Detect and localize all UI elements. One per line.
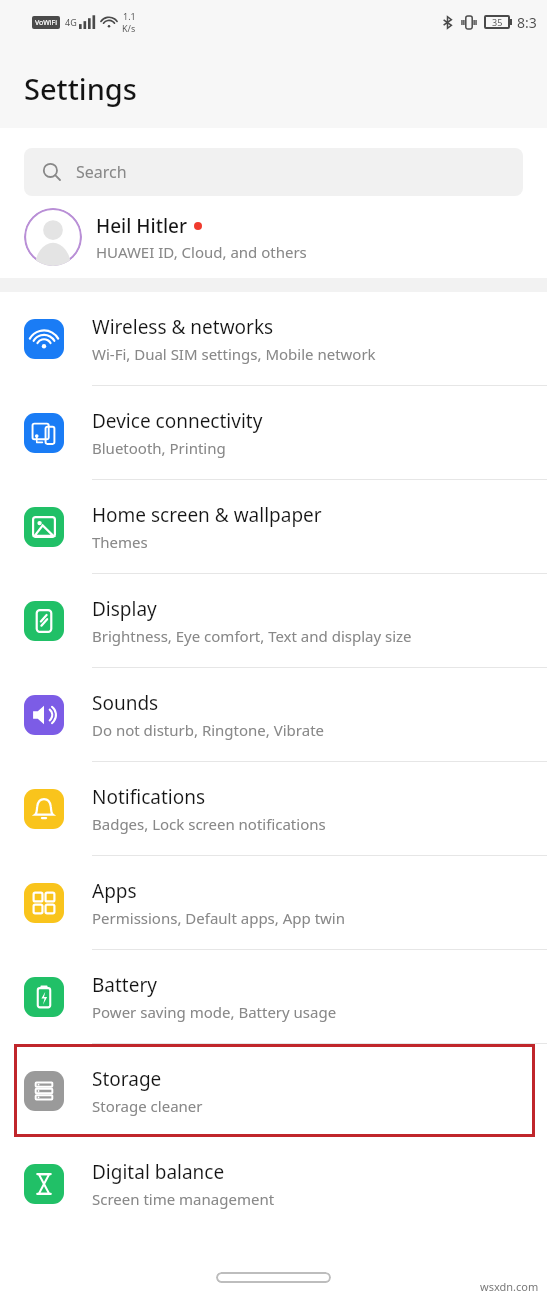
- staticText: Search: [76, 161, 127, 183]
- staticText: Permissions, Default apps, App twin: [92, 908, 346, 928]
- staticText: Storage: [92, 1066, 162, 1092]
- staticText: Screen time management: [92, 1189, 275, 1209]
- staticText: Themes: [92, 532, 148, 552]
- other: Apps: [31, 890, 57, 916]
- button[interactable]: Battery: [0, 950, 547, 1043]
- button[interactable]: Display: [0, 574, 547, 667]
- staticText: Settings: [24, 69, 137, 108]
- other: Notifications: [31, 796, 57, 822]
- staticText: K/s: [122, 22, 136, 34]
- staticText: 4G: [65, 16, 77, 28]
- staticText: Power saving mode, Battery usage: [92, 1002, 337, 1022]
- button[interactable]: Heil Hitler: [0, 196, 547, 278]
- staticText: wsxdn.com: [480, 1279, 539, 1294]
- button[interactable]: Notifications: [0, 762, 547, 855]
- staticText: Badges, Lock screen notifications: [92, 814, 326, 834]
- other: Battery: [31, 984, 57, 1010]
- button[interactable]: Device connectivity: [0, 386, 547, 479]
- button[interactable]: Sounds: [0, 668, 547, 761]
- staticText: Home screen & wallpaper: [92, 502, 322, 528]
- staticText: Notifications: [92, 784, 206, 810]
- staticText: HUAWEI ID, Cloud, and others: [96, 242, 307, 262]
- other: Display: [31, 608, 57, 634]
- button[interactable]: Wireless and networks: [0, 292, 547, 385]
- staticText: Sounds: [92, 690, 159, 716]
- staticText: Digital balance: [92, 1159, 225, 1185]
- staticText: Battery: [92, 972, 157, 998]
- staticText: Brightness, Eye comfort, Text and displa…: [92, 626, 412, 646]
- staticText: Storage cleaner: [92, 1096, 203, 1116]
- staticText: 8:3: [517, 13, 537, 32]
- staticText: Display: [92, 596, 157, 622]
- other: Digital balance: [31, 1171, 57, 1197]
- button[interactable]: Storage: [0, 1044, 547, 1137]
- button[interactable]: Apps: [0, 856, 547, 949]
- staticText: Do not disturb, Ringtone, Vibrate: [92, 720, 325, 740]
- staticText: Wi-Fi, Dual SIM settings, Mobile network: [92, 344, 376, 364]
- other: Device connectivity: [31, 420, 57, 446]
- button[interactable]: Home screen and wallpaper: [0, 480, 547, 573]
- staticText: 1.1: [123, 10, 136, 22]
- button[interactable]: Digital balance: [0, 1137, 547, 1230]
- staticText: Bluetooth, Printing: [92, 438, 226, 458]
- staticText: Wireless & networks: [92, 314, 274, 340]
- staticText: 35: [492, 16, 503, 28]
- staticText: Apps: [92, 878, 137, 904]
- other: Sounds: [31, 702, 57, 728]
- staticText: Device connectivity: [92, 408, 263, 434]
- button[interactable]: Search: [24, 148, 523, 196]
- staticText: VoWiFi: [35, 18, 58, 28]
- other: Wireless and networks: [31, 326, 57, 352]
- other: Home screen and wallpaper: [31, 514, 57, 540]
- other: Storage: [31, 1078, 57, 1104]
- staticText: Heil Hitler: [96, 213, 188, 239]
